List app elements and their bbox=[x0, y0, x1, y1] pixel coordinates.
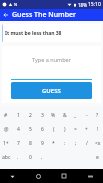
button[interactable]: 7 bbox=[12, 136, 24, 150]
button[interactable]: abc bbox=[0, 150, 12, 164]
button[interactable]: Recents bbox=[51, 169, 77, 183]
button[interactable]: / bbox=[81, 136, 92, 150]
button[interactable]: 0 bbox=[24, 150, 36, 164]
staticText: 18% bbox=[78, 2, 87, 8]
staticText: 1+ bbox=[3, 140, 9, 147]
staticText: 0 bbox=[29, 154, 32, 161]
staticText: Type a number bbox=[2, 56, 101, 63]
button[interactable]: 3 bbox=[36, 108, 48, 122]
button[interactable]: , bbox=[36, 150, 48, 164]
button[interactable]: ) bbox=[59, 122, 70, 136]
button[interactable]: 9 bbox=[36, 136, 48, 150]
staticText: 1 bbox=[17, 112, 20, 119]
button[interactable]: ? bbox=[92, 108, 103, 122]
button[interactable]: 1+ bbox=[0, 136, 12, 150]
staticText: It must be less than 38 bbox=[5, 30, 62, 37]
staticText: # bbox=[4, 112, 8, 119]
button[interactable]: 4 bbox=[12, 122, 24, 136]
button[interactable]: 5 bbox=[24, 122, 36, 136]
staticText: . bbox=[17, 154, 19, 161]
staticText: ! bbox=[97, 126, 99, 133]
staticText: N bbox=[14, 2, 18, 7]
staticText: % bbox=[51, 112, 56, 119]
button[interactable]: + bbox=[81, 122, 92, 136]
staticText: 3 bbox=[41, 112, 44, 119]
staticText: e bbox=[96, 154, 99, 161]
staticText: abc bbox=[2, 154, 11, 161]
staticText: = bbox=[74, 126, 77, 133]
staticText: - bbox=[86, 112, 88, 119]
button[interactable]: : bbox=[59, 136, 70, 150]
staticText: ( bbox=[53, 126, 55, 133]
button[interactable]: GUESS bbox=[11, 82, 92, 99]
button[interactable]: ( bbox=[48, 122, 59, 136]
button[interactable]: 8 bbox=[24, 136, 36, 150]
staticText: + bbox=[85, 126, 88, 133]
button[interactable]: 2 bbox=[24, 108, 36, 122]
button[interactable]: @ bbox=[0, 122, 12, 136]
button[interactable]: 1 bbox=[12, 108, 24, 122]
button[interactable]: 6 bbox=[36, 122, 48, 136]
button[interactable]: _ bbox=[70, 108, 81, 122]
button[interactable]: Back bbox=[0, 169, 25, 183]
button[interactable]: # bbox=[0, 108, 12, 122]
staticText: 9 bbox=[41, 140, 44, 147]
staticText: 7 bbox=[17, 140, 20, 147]
button[interactable]: - bbox=[81, 108, 92, 122]
staticText: 8 bbox=[29, 140, 32, 147]
button[interactable]: <x bbox=[92, 136, 103, 150]
button[interactable]: Back bbox=[0, 9, 12, 21]
staticText: 2 bbox=[29, 112, 32, 119]
staticText: 5 bbox=[29, 126, 32, 133]
staticText: <x bbox=[95, 140, 101, 147]
staticText: 4 bbox=[17, 126, 20, 133]
staticText: ) bbox=[64, 126, 66, 133]
button[interactable]: e bbox=[92, 150, 103, 164]
button[interactable]: Home bbox=[25, 169, 51, 183]
button[interactable]: . bbox=[12, 150, 24, 164]
staticText: 15:10 bbox=[88, 1, 101, 8]
button[interactable]: ! bbox=[92, 122, 103, 136]
staticText: , bbox=[41, 154, 43, 161]
button[interactable]: * bbox=[48, 136, 59, 150]
button[interactable]: ; bbox=[70, 136, 81, 150]
staticText: / bbox=[86, 140, 88, 147]
staticText: 6 bbox=[41, 126, 44, 133]
staticText: _ bbox=[74, 112, 77, 119]
button[interactable]: = bbox=[70, 122, 81, 136]
button[interactable]: & bbox=[59, 108, 70, 122]
staticText: @ bbox=[4, 126, 9, 133]
staticText: & bbox=[63, 112, 67, 119]
staticText: : bbox=[64, 140, 66, 147]
button[interactable]: % bbox=[48, 108, 59, 122]
staticText: GUESS bbox=[42, 87, 61, 95]
staticText: * bbox=[52, 140, 55, 147]
staticText: ? bbox=[96, 112, 99, 119]
staticText: ; bbox=[75, 140, 77, 147]
staticText: Guess The Number bbox=[12, 10, 77, 20]
